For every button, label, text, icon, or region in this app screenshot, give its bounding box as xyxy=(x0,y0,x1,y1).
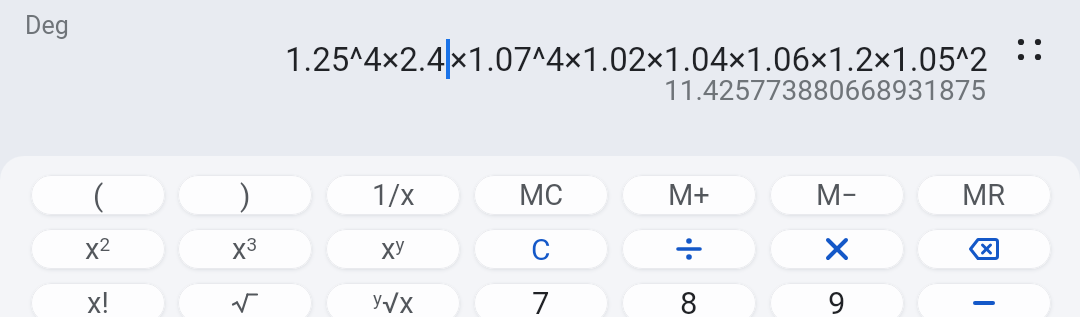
staticText: 1/x xyxy=(372,178,415,212)
staticText: MC xyxy=(519,178,564,212)
button[interactable]: y√x xyxy=(326,283,460,317)
button[interactable]: 1/x xyxy=(326,175,460,215)
button[interactable]: 7 xyxy=(474,283,608,317)
staticText: 7 xyxy=(532,285,550,317)
button[interactable]: C xyxy=(474,229,608,269)
staticText: x! xyxy=(87,286,109,317)
button[interactable]: ) xyxy=(178,175,312,215)
button[interactable] xyxy=(1013,36,1047,64)
staticText: 1.25^4×2.4 xyxy=(285,40,446,79)
button[interactable]: M− xyxy=(770,175,904,215)
button[interactable] xyxy=(917,283,1051,317)
button[interactable]: x3 xyxy=(178,229,312,269)
staticText: C xyxy=(531,232,551,267)
staticText: 11.425773880668931875 xyxy=(664,74,987,107)
staticText: Deg xyxy=(25,11,69,40)
button[interactable]: MC xyxy=(474,175,608,215)
staticText: x3 xyxy=(232,232,258,266)
button[interactable]: xy xyxy=(326,229,460,269)
staticText: ) xyxy=(240,178,251,213)
button[interactable]: 9 xyxy=(770,283,904,317)
button[interactable]: M+ xyxy=(622,175,756,215)
staticText: M− xyxy=(816,178,858,212)
button[interactable]: MR xyxy=(917,175,1051,215)
staticText: ×1.07^4×1.02×1.04×1.06×1.2×1.05^2 xyxy=(450,40,988,79)
button[interactable] xyxy=(917,229,1051,269)
staticText: y√x xyxy=(373,286,414,317)
button[interactable]: 8 xyxy=(622,283,756,317)
button[interactable]: ( xyxy=(31,175,165,215)
button[interactable] xyxy=(622,229,756,269)
staticText: M+ xyxy=(668,178,710,212)
staticText: 9 xyxy=(828,285,846,317)
button[interactable]: x2 xyxy=(31,229,165,269)
button[interactable] xyxy=(770,229,904,269)
button[interactable] xyxy=(178,283,312,317)
staticText: 8 xyxy=(680,285,698,317)
staticText: x2 xyxy=(85,232,111,266)
staticText: xy xyxy=(381,232,405,266)
staticText: ( xyxy=(93,178,104,213)
button[interactable]: x! xyxy=(31,283,165,317)
staticText: MR xyxy=(962,178,1006,212)
